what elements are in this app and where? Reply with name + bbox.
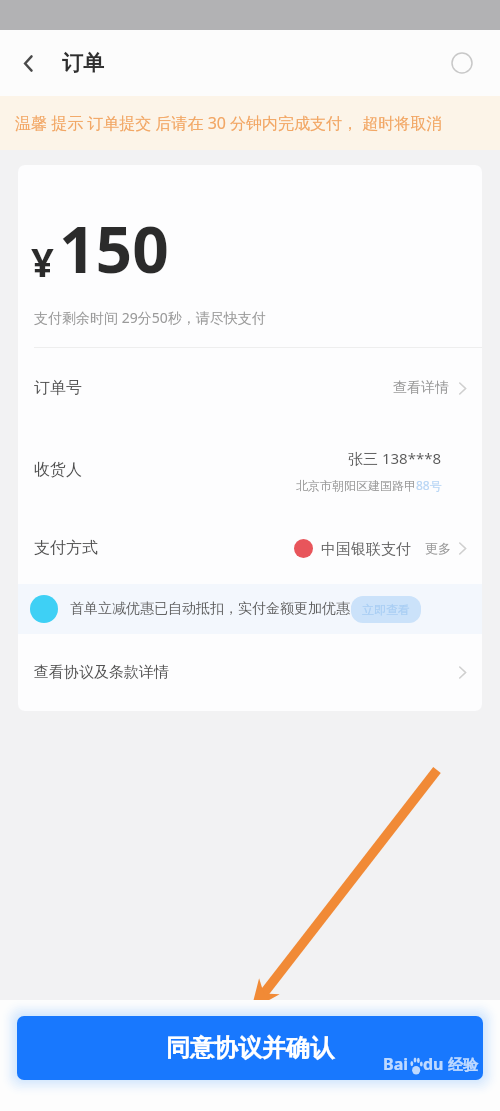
staticText: 首单立减优惠已自动抵扣，实付金额更加优惠 bbox=[70, 600, 350, 618]
button[interactable]: 首单立减优惠已自动抵扣，实付金额更加优惠 bbox=[18, 584, 482, 634]
staticText: 张三 138***8 bbox=[348, 448, 442, 468]
staticText: 订单号 bbox=[34, 378, 82, 398]
staticText: 经验 bbox=[448, 1056, 478, 1075]
button[interactable]: Back bbox=[8, 43, 48, 83]
button[interactable]: 收货人 bbox=[18, 428, 482, 512]
staticText: du bbox=[423, 1053, 444, 1075]
staticText: 支付剩余时间 29分50秒，请尽快支付 bbox=[34, 308, 266, 327]
staticText: 温馨 提示 订单提交 后请在 30 分钟内完成支付， 超时将取消 bbox=[15, 112, 488, 134]
staticText: 查看协议及条款详情 bbox=[34, 663, 169, 682]
staticText: Bai bbox=[383, 1053, 409, 1075]
staticText: 中国银联支付 bbox=[321, 538, 415, 558]
staticText: 北京市朝阳区建国路甲 bbox=[296, 478, 416, 493]
staticText: 150 bbox=[59, 205, 169, 292]
button[interactable]: Customer service bbox=[442, 43, 482, 83]
staticText: 收货人 bbox=[34, 460, 82, 480]
button[interactable]: 同意协议并确认 bbox=[17, 1016, 483, 1080]
staticText: ¥ bbox=[31, 234, 54, 288]
staticText: 立即查看 bbox=[362, 602, 410, 617]
staticText: 订单 bbox=[62, 50, 104, 76]
staticText: 支付方式 bbox=[34, 538, 98, 558]
button[interactable]: 订单号 bbox=[18, 348, 482, 428]
staticText: 更多 bbox=[425, 540, 451, 556]
button[interactable]: 立即查看 bbox=[362, 602, 410, 617]
staticText: 查看详情 bbox=[393, 379, 449, 397]
staticText: 88号 bbox=[416, 477, 442, 493]
staticText: 同意协议并确认 bbox=[166, 1033, 334, 1063]
button[interactable]: 支付方式 bbox=[18, 512, 482, 584]
button[interactable]: 查看协议及条款详情 bbox=[18, 634, 482, 711]
